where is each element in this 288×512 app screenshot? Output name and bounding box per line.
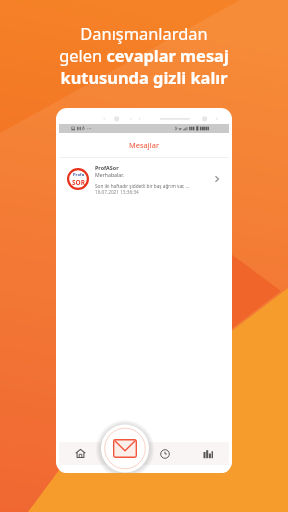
button[interactable]: Profa	[59, 158, 229, 200]
staticText: Son iki haftadır şiddetli bir baş ağrım …	[95, 183, 190, 189]
staticText: Profa	[73, 172, 85, 178]
staticText: Danışmanlardan gelen cevaplar mesaj kutu…	[59, 22, 229, 88]
staticText: ProfASor	[95, 164, 119, 171]
button[interactable]: Messages	[101, 442, 143, 465]
staticText: Merhabalar.	[95, 171, 124, 178]
staticText: 16.07.2021 13:36:34	[95, 189, 139, 195]
staticText: SOR	[72, 178, 85, 187]
staticText: Mesajlar	[129, 140, 160, 150]
button[interactable]: Reports	[186, 442, 229, 465]
button[interactable]: History	[143, 442, 186, 465]
button[interactable]: Messages	[97, 433, 153, 464]
button[interactable]: Home	[59, 442, 101, 465]
